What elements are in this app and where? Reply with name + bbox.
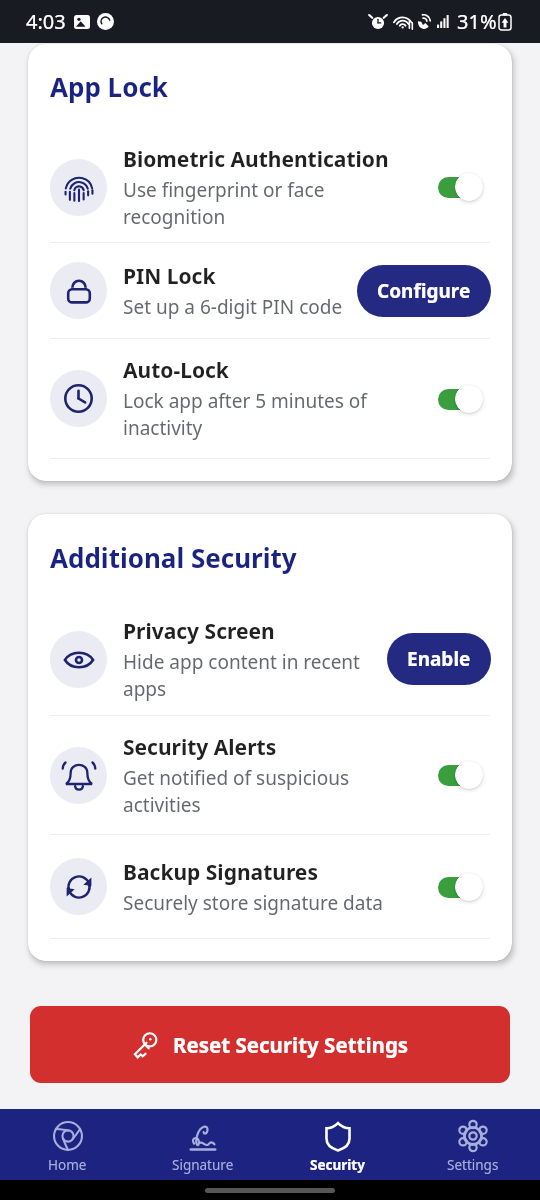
other: Settings: [457, 1120, 489, 1152]
button[interactable]: PIN Lock: [28, 243, 512, 338]
staticText: Auto-Lock: [123, 356, 229, 385]
staticText: Security: [310, 1156, 365, 1174]
button[interactable]: Settings: [405, 1109, 540, 1180]
button[interactable]: Configure: [357, 265, 491, 317]
button[interactable]: Toggle: [438, 384, 491, 414]
staticText: Privacy Screen: [123, 617, 275, 646]
button[interactable]: Privacy Screen: [28, 603, 512, 715]
staticText: 4:03: [26, 8, 66, 35]
staticText: App Lock: [50, 69, 168, 104]
staticText: Backup Signatures: [123, 858, 318, 887]
staticText: Signature: [172, 1156, 234, 1174]
other: Key: [131, 1031, 159, 1059]
staticText: Additional Security: [50, 540, 297, 575]
staticText: Configure: [377, 278, 471, 304]
staticText: Hide app content in recent apps: [123, 649, 360, 702]
staticText: 31%: [457, 8, 497, 35]
staticText: Lock app after 5 minutes of inactivity: [123, 388, 367, 441]
button[interactable]: Backup Signatures: [28, 835, 512, 938]
staticText: Home: [48, 1156, 87, 1174]
staticText: Reset Security Settings: [173, 1031, 409, 1059]
staticText: Set up a 6-digit PIN code: [123, 294, 343, 320]
staticText: Enable: [407, 646, 471, 672]
staticText: Use fingerprint or face recognition: [123, 177, 325, 230]
staticText: PIN Lock: [123, 262, 216, 291]
staticText: Settings: [447, 1156, 499, 1174]
button[interactable]: Security Alerts: [28, 716, 512, 834]
button[interactable]: Home: [0, 1109, 135, 1180]
staticText: Get notified of suspicious activities: [123, 765, 349, 818]
other: Security: [322, 1120, 354, 1152]
staticText: Biometric Authentication: [123, 145, 389, 174]
button[interactable]: Toggle: [438, 760, 491, 790]
button[interactable]: Security: [270, 1109, 405, 1180]
button[interactable]: Auto-Lock: [28, 339, 512, 458]
button[interactable]: Signature: [135, 1109, 270, 1180]
staticText: Securely store signature data: [123, 890, 383, 916]
button[interactable]: Toggle: [438, 872, 491, 902]
button[interactable]: Enable: [387, 633, 491, 685]
other: Home: [52, 1120, 84, 1152]
button[interactable]: Key: [30, 1006, 510, 1083]
button[interactable]: Biometric Authentication: [28, 132, 512, 242]
button[interactable]: Toggle: [438, 172, 491, 202]
other: Signature: [187, 1120, 219, 1152]
staticText: Security Alerts: [123, 733, 277, 762]
